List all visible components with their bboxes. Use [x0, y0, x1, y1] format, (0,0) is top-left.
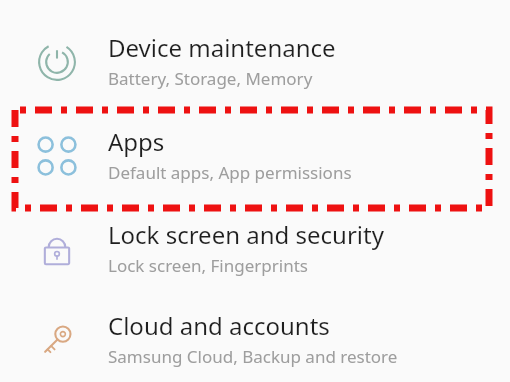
staticText: Cloud and accounts — [108, 309, 330, 342]
button[interactable]: Cloud and accounts — [0, 301, 510, 381]
staticText: Apps — [108, 125, 165, 158]
staticText: Lock screen, Fingerprints — [108, 254, 308, 277]
staticText: Lock screen and security — [108, 218, 384, 251]
button[interactable]: Lock screen and security — [0, 208, 510, 301]
button[interactable]: Device maintenance — [0, 22, 510, 112]
other: Device maintenance — [38, 43, 76, 81]
other: Cloud and accounts — [38, 321, 76, 359]
other: Apps — [38, 137, 76, 175]
staticText: Default apps, App permissions — [108, 161, 352, 184]
button[interactable]: Apps — [0, 112, 510, 208]
other: Lock screen and security — [38, 230, 76, 268]
staticText: Battery, Storage, Memory — [108, 67, 313, 90]
staticText: Device maintenance — [108, 31, 336, 64]
staticText: Samsung Cloud, Backup and restore — [108, 345, 398, 368]
